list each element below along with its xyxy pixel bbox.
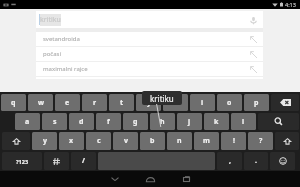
staticText: t [120,98,124,108]
button[interactable]: , [217,152,242,170]
button[interactable]: y [32,132,57,150]
button[interactable]: n [167,132,192,150]
button[interactable]: počasí [36,47,263,61]
button[interactable]: maximalni rajce [36,62,263,76]
button[interactable]: c [86,132,111,150]
button[interactable]: t [109,94,134,111]
staticText: ? [259,136,263,146]
button[interactable]: v [113,132,138,150]
button[interactable]: h [150,113,175,130]
button[interactable]: svetandroida [36,32,263,46]
staticText: v [124,136,128,146]
staticText: 4:13 [285,1,296,8]
button[interactable]: u [163,94,188,111]
staticText: y [43,136,47,146]
button[interactable]: i [190,94,215,111]
button[interactable]: Settings [44,152,69,170]
staticText: e [65,98,70,108]
button[interactable]: Emoji [270,152,295,170]
button[interactable]: g [123,113,148,130]
button[interactable]: Voice search [245,12,261,28]
staticText: maximalni rajce [43,65,88,73]
button[interactable]: q [1,94,26,111]
staticText: kritiku [40,15,61,25]
staticText: ?123 [16,158,29,165]
button[interactable]: Home [134,171,167,187]
button[interactable]: ! [221,132,246,150]
staticText: o [227,98,232,108]
staticText: a [25,117,30,127]
button[interactable]: p [244,94,269,111]
staticText: b [150,136,155,146]
staticText: m [203,136,210,146]
staticText: u [173,98,178,108]
button[interactable]: y [136,94,161,111]
staticText: j [188,117,191,127]
button[interactable]: k [204,113,229,130]
staticText: p [254,98,259,108]
staticText: k [214,117,219,127]
staticText: d [79,117,84,127]
staticText: . [255,156,257,166]
staticText: , [229,156,231,166]
button[interactable]: w [28,94,53,111]
button[interactable]: Shift [2,132,30,150]
staticText: f [107,117,110,127]
staticText: kritiku [150,93,174,104]
button[interactable]: d [69,113,94,130]
button[interactable]: o [217,94,242,111]
staticText: ! [233,136,235,146]
button[interactable]: Backspace [271,94,299,111]
button[interactable]: ? [248,132,273,150]
button[interactable]: r [82,94,107,111]
staticText: r [93,98,97,108]
button[interactable]: Insert suggestion [247,48,260,61]
button[interactable]: / [71,152,96,170]
button[interactable]: x [59,132,84,150]
button[interactable]: b [140,132,165,150]
button[interactable]: m [194,132,219,150]
button[interactable]: . [244,152,268,170]
staticText: i [201,98,204,108]
button[interactable]: Recent apps [170,171,203,187]
staticText: y [147,98,151,108]
staticText: g [133,117,138,127]
button[interactable]: Insert suggestion [247,33,260,46]
button[interactable]: Shift [275,132,299,150]
staticText: s [53,117,57,127]
staticText: w [38,98,44,108]
button[interactable]: s [42,113,67,130]
staticText: počasí [43,50,61,58]
button[interactable]: Insert suggestion [247,63,260,76]
staticText: / [82,156,85,166]
staticText: h [160,117,165,127]
staticText: svetandroida [43,35,80,43]
staticText: c [97,136,101,146]
button[interactable]: ?123 [2,152,42,170]
button[interactable]: e [55,94,80,111]
button[interactable]: j [177,113,202,130]
button[interactable]: a [15,113,40,130]
button[interactable]: Search [258,113,299,130]
staticText: q [11,98,16,108]
button[interactable]: kritiku [36,11,263,28]
staticText: n [177,136,182,146]
button[interactable]: Hide keyboard [98,171,131,187]
staticText: l [242,117,245,127]
staticText: x [69,136,74,146]
button[interactable]: f [96,113,121,130]
button[interactable]: l [231,113,256,130]
